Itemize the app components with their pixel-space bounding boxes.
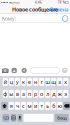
button[interactable] bbox=[23, 114, 53, 122]
button[interactable]: а bbox=[21, 90, 26, 98]
staticText: ы bbox=[9, 90, 13, 97]
button[interactable]: Send bbox=[61, 65, 69, 76]
button[interactable]: н bbox=[33, 78, 38, 86]
staticText: ж bbox=[58, 90, 62, 97]
staticText: п bbox=[28, 90, 31, 97]
staticText: д bbox=[52, 90, 55, 97]
button[interactable]: Delete bbox=[63, 102, 70, 110]
staticText: р bbox=[34, 90, 37, 97]
staticText: ю bbox=[58, 102, 62, 109]
button[interactable]: ж bbox=[57, 90, 62, 98]
button[interactable]: у bbox=[15, 78, 20, 86]
staticText: 4:46 bbox=[35, 1, 42, 4]
button[interactable]: ц bbox=[9, 78, 14, 86]
staticText: Новое сообщение bbox=[12, 6, 58, 13]
button[interactable]: х bbox=[63, 78, 68, 86]
staticText: в bbox=[16, 90, 19, 97]
staticText: й bbox=[4, 78, 7, 85]
button[interactable]: Message field bbox=[29, 67, 61, 74]
staticText: о bbox=[40, 90, 43, 97]
staticText: Ввод bbox=[57, 115, 66, 120]
button[interactable]: Photos bbox=[19, 65, 29, 76]
staticText: с bbox=[22, 102, 25, 109]
staticText: ш bbox=[45, 78, 50, 85]
button[interactable]: о bbox=[39, 90, 44, 98]
button[interactable]: App Store bbox=[9, 65, 19, 76]
staticText: т bbox=[41, 102, 43, 109]
button[interactable]: Кому: bbox=[0, 14, 70, 23]
staticText: з bbox=[58, 78, 61, 85]
staticText: л bbox=[46, 90, 49, 97]
staticText: е bbox=[28, 78, 31, 85]
staticText: MTS RUS bbox=[9, 1, 19, 4]
button[interactable]: ф bbox=[3, 90, 8, 98]
button[interactable]: б bbox=[51, 102, 56, 110]
button[interactable]: д bbox=[51, 90, 56, 98]
button[interactable]: ы bbox=[9, 90, 14, 98]
button[interactable]: Shift bbox=[1, 102, 8, 110]
button[interactable]: Camera bbox=[1, 65, 9, 76]
button[interactable]: Dictation bbox=[18, 114, 22, 122]
staticText: ь bbox=[46, 102, 49, 109]
staticText: э bbox=[64, 90, 67, 97]
button[interactable]: 123 bbox=[2, 114, 9, 122]
button[interactable]: ш bbox=[45, 78, 50, 86]
button[interactable]: с bbox=[21, 102, 26, 110]
button[interactable]: я bbox=[9, 102, 14, 110]
staticText: м bbox=[27, 102, 31, 109]
staticText: 78 % bbox=[58, 1, 65, 4]
staticText: ф bbox=[3, 90, 7, 97]
staticText: Кому: bbox=[2, 15, 16, 22]
staticText: а bbox=[22, 90, 25, 97]
button[interactable]: п bbox=[27, 90, 32, 98]
staticText: ц bbox=[10, 78, 13, 85]
staticText: н bbox=[34, 78, 37, 85]
staticText: к bbox=[22, 78, 25, 85]
button[interactable]: в bbox=[15, 90, 20, 98]
staticText: х bbox=[64, 78, 67, 85]
button[interactable]: и bbox=[33, 102, 38, 110]
button[interactable]: й bbox=[3, 78, 8, 86]
button[interactable]: т bbox=[39, 102, 44, 110]
button[interactable]: Next keyboard bbox=[11, 114, 16, 122]
button[interactable]: Ввод bbox=[55, 114, 69, 122]
button[interactable]: Отмена bbox=[48, 5, 70, 14]
button[interactable]: ч bbox=[15, 102, 20, 110]
button[interactable]: ю bbox=[57, 102, 62, 110]
staticText: 123 bbox=[3, 115, 9, 120]
button[interactable]: л bbox=[45, 90, 50, 98]
button[interactable]: щ bbox=[51, 78, 56, 86]
staticText: г bbox=[41, 78, 43, 85]
staticText: б bbox=[52, 102, 55, 109]
staticText: щ bbox=[51, 78, 56, 85]
button[interactable]: е bbox=[27, 78, 32, 86]
staticText: Отмена bbox=[49, 6, 68, 13]
staticText: ч bbox=[16, 102, 19, 109]
button[interactable]: э bbox=[63, 90, 68, 98]
button[interactable]: м bbox=[27, 102, 32, 110]
staticText: я bbox=[10, 102, 13, 109]
button[interactable]: з bbox=[57, 78, 62, 86]
button[interactable]: г bbox=[39, 78, 44, 86]
staticText: и bbox=[34, 102, 37, 109]
button[interactable]: ь bbox=[45, 102, 50, 110]
staticText: у bbox=[16, 78, 19, 85]
button[interactable]: р bbox=[33, 90, 38, 98]
button[interactable]: к bbox=[21, 78, 26, 86]
